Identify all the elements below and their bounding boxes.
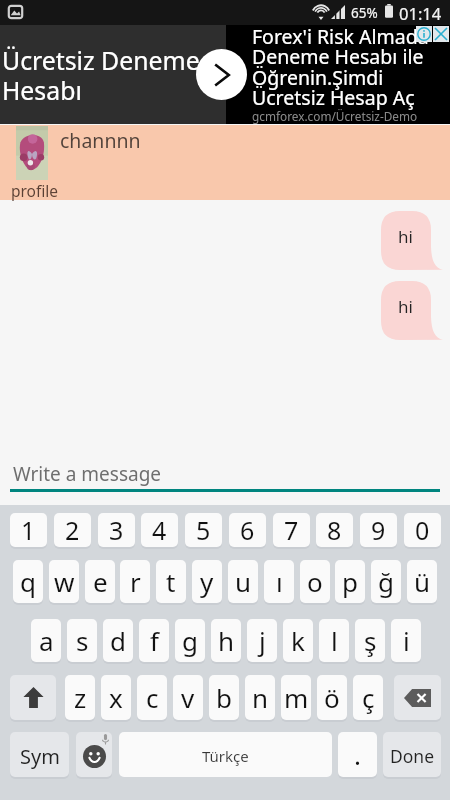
staticText: Write a message bbox=[13, 461, 162, 487]
staticText: 5 bbox=[196, 513, 211, 547]
button[interactable]: hi bbox=[381, 211, 445, 270]
button[interactable]: ü bbox=[407, 560, 437, 605]
button[interactable]: d bbox=[103, 619, 133, 664]
staticText: 01:14 bbox=[399, 2, 442, 24]
button[interactable]: ı bbox=[264, 560, 294, 605]
staticText: Ücretsiz Hesap Aç bbox=[252, 84, 415, 111]
button[interactable]: ğ bbox=[371, 560, 401, 605]
staticText: b bbox=[216, 680, 232, 715]
button[interactable]: i bbox=[391, 619, 421, 664]
button[interactable]: w bbox=[49, 560, 79, 605]
staticText: Türkçe bbox=[202, 746, 249, 766]
staticText: r bbox=[130, 564, 141, 599]
button[interactable]: Done bbox=[383, 732, 441, 779]
staticText: l bbox=[331, 623, 338, 658]
button[interactable]: Open advertisement bbox=[196, 49, 247, 100]
staticText: Deneme Hesabı ile bbox=[252, 43, 424, 70]
button[interactable]: 2 bbox=[54, 513, 91, 549]
staticText: p bbox=[342, 564, 358, 599]
staticText: z bbox=[74, 680, 87, 715]
staticText: q bbox=[20, 564, 36, 599]
staticText: Ücretsiz Deneme bbox=[2, 43, 200, 77]
button[interactable]: Write a message bbox=[0, 452, 450, 493]
button[interactable]: p bbox=[335, 560, 365, 605]
button[interactable]: 7 bbox=[273, 513, 310, 549]
staticText: y bbox=[200, 564, 214, 599]
staticText: v bbox=[181, 680, 195, 715]
button[interactable]: 5 bbox=[185, 513, 222, 549]
staticText: m bbox=[284, 680, 309, 715]
button[interactable]: Shift bbox=[10, 675, 56, 722]
button[interactable]: Close advertisement bbox=[433, 26, 449, 42]
button[interactable]: . bbox=[338, 732, 377, 779]
staticText: c bbox=[146, 680, 159, 715]
staticText: Öğrenin.Şimdi bbox=[252, 64, 384, 91]
button[interactable]: Ücretsiz Deneme bbox=[0, 25, 450, 124]
staticText: Done bbox=[390, 744, 435, 768]
staticText: ş bbox=[364, 623, 377, 658]
button[interactable]: y bbox=[192, 560, 222, 605]
button[interactable]: t bbox=[156, 560, 186, 605]
staticText: ç bbox=[362, 680, 375, 715]
button[interactable]: 4 bbox=[141, 513, 178, 549]
staticText: i bbox=[403, 623, 410, 658]
staticText: g bbox=[182, 623, 198, 658]
staticText: ö bbox=[324, 680, 340, 715]
staticText: u bbox=[235, 564, 252, 599]
button[interactable]: ö bbox=[317, 675, 347, 722]
button[interactable]: 9 bbox=[360, 513, 397, 549]
staticText: k bbox=[291, 623, 305, 658]
staticText: ı bbox=[276, 564, 283, 599]
button[interactable]: z bbox=[65, 675, 95, 722]
staticText: gcmforex.com/Ücretsiz-Demo bbox=[252, 108, 418, 124]
button[interactable]: ş bbox=[355, 619, 385, 664]
staticText: Hesabı bbox=[2, 73, 82, 107]
button[interactable]: m bbox=[281, 675, 311, 722]
button[interactable]: 0 bbox=[404, 513, 441, 549]
button[interactable]: 1 bbox=[10, 513, 47, 549]
staticText: channnn bbox=[60, 127, 141, 154]
button[interactable]: 3 bbox=[98, 513, 135, 549]
button[interactable]: k bbox=[283, 619, 313, 664]
button[interactable]: f bbox=[139, 619, 169, 664]
button[interactable]: s bbox=[67, 619, 97, 664]
staticText: 4 bbox=[152, 513, 167, 547]
button[interactable]: Space bbox=[119, 732, 332, 777]
button[interactable]: e bbox=[85, 560, 115, 605]
staticText: 2 bbox=[65, 513, 80, 547]
staticText: a bbox=[39, 623, 54, 658]
button[interactable]: b bbox=[209, 675, 239, 722]
button[interactable]: Ad information bbox=[416, 26, 432, 42]
button[interactable]: j bbox=[247, 619, 277, 664]
button[interactable]: Backspace bbox=[394, 675, 441, 722]
button[interactable]: 8 bbox=[316, 513, 353, 549]
button[interactable]: hi bbox=[381, 281, 445, 340]
staticText: o bbox=[307, 564, 323, 599]
button[interactable]: g bbox=[175, 619, 205, 664]
button[interactable]: x bbox=[101, 675, 131, 722]
staticText: 6 bbox=[240, 513, 255, 547]
button[interactable]: Profile photo bbox=[16, 126, 48, 180]
staticText: 9 bbox=[371, 513, 386, 547]
button[interactable]: a bbox=[31, 619, 61, 664]
button[interactable]: n bbox=[245, 675, 275, 722]
button[interactable]: ç bbox=[353, 675, 383, 722]
staticText: n bbox=[252, 680, 269, 715]
button[interactable]: 6 bbox=[229, 513, 266, 549]
staticText: Forex'i Risk Almada bbox=[252, 23, 429, 50]
button[interactable]: v bbox=[173, 675, 203, 722]
button[interactable]: l bbox=[319, 619, 349, 664]
button[interactable]: c bbox=[137, 675, 167, 722]
button[interactable]: h bbox=[211, 619, 241, 664]
button[interactable]: q bbox=[13, 560, 43, 605]
button[interactable]: Emoji and voice input bbox=[76, 732, 112, 779]
staticText: 3 bbox=[109, 513, 124, 547]
staticText: ğ bbox=[378, 564, 394, 599]
staticText: x bbox=[109, 680, 123, 715]
staticText: h bbox=[218, 623, 235, 658]
button[interactable]: Sym bbox=[10, 732, 69, 779]
staticText: ü bbox=[414, 564, 431, 599]
button[interactable]: u bbox=[228, 560, 258, 605]
button[interactable]: o bbox=[300, 560, 330, 605]
button[interactable]: r bbox=[120, 560, 150, 605]
